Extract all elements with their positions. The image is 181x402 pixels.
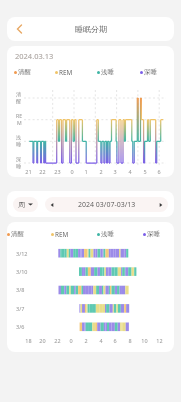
staticText: REM: [55, 230, 69, 238]
staticText: 清醒: [11, 230, 24, 238]
staticText: 6: [157, 168, 161, 175]
staticText: 深: [16, 156, 22, 163]
staticText: 18: [25, 337, 32, 344]
staticText: 睡: [16, 163, 22, 170]
staticText: 2024.03.13: [15, 51, 54, 61]
staticText: 浅睡: [101, 230, 114, 238]
staticText: 3/10: [16, 268, 28, 275]
staticText: 4: [99, 337, 103, 344]
staticText: 3/8: [16, 286, 25, 293]
staticText: 5: [143, 168, 147, 175]
staticText: 20: [39, 337, 46, 344]
staticText: 21: [25, 168, 32, 175]
staticText: 清醒: [18, 68, 31, 76]
staticText: 周: [18, 200, 25, 209]
staticText: 浅睡: [101, 68, 114, 76]
staticText: 3/12: [16, 250, 28, 257]
button[interactable]: 周: [13, 197, 38, 212]
staticText: 3/6: [16, 323, 25, 330]
button[interactable]: Next week: [154, 198, 168, 212]
staticText: 10: [141, 337, 148, 344]
staticText: 22: [54, 337, 61, 344]
staticText: 睡: [16, 141, 22, 148]
staticText: REM: [59, 68, 73, 76]
staticText: RE: [16, 112, 23, 119]
staticText: 醒: [16, 98, 22, 105]
staticText: 2: [84, 337, 88, 344]
button[interactable]: Back: [7, 17, 31, 41]
staticText: 12: [156, 337, 163, 344]
staticText: 3/7: [16, 305, 25, 312]
staticText: 清: [16, 91, 22, 98]
staticText: 2024 03/07-03/13: [78, 200, 136, 210]
staticText: 3: [113, 168, 117, 175]
staticText: 浅: [16, 134, 22, 141]
staticText: 2: [99, 168, 103, 175]
staticText: 8: [128, 337, 132, 344]
staticText: 深睡: [144, 68, 157, 76]
staticText: 深睡: [147, 230, 160, 238]
staticText: 0: [70, 168, 74, 175]
staticText: 睡眠分期: [75, 24, 107, 34]
staticText: 6: [113, 337, 117, 344]
button[interactable]: Previous week: [45, 198, 59, 212]
staticText: M: [17, 119, 22, 126]
staticText: 22: [39, 168, 46, 175]
staticText: 4: [128, 168, 132, 175]
staticText: 0: [69, 337, 73, 344]
staticText: 1: [84, 168, 88, 175]
staticText: 23: [54, 168, 61, 175]
